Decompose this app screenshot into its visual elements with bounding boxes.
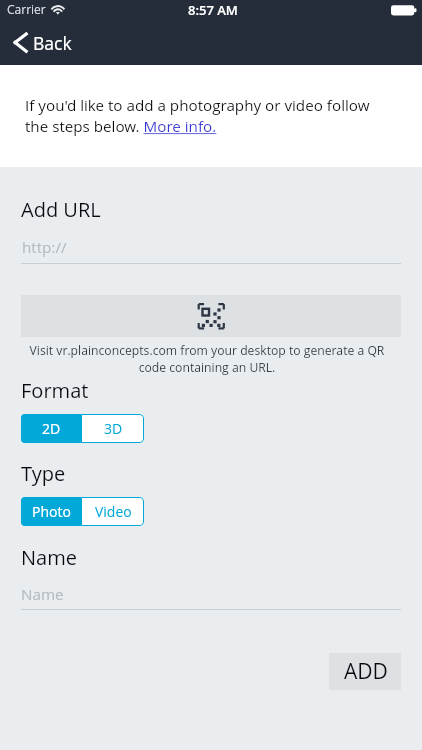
staticText: Video xyxy=(95,502,132,521)
staticText: Name xyxy=(21,544,78,571)
staticText: Add URL xyxy=(21,196,101,223)
button[interactable]: Video xyxy=(82,497,144,526)
staticText: ADD xyxy=(344,657,388,686)
button[interactable]: 2D xyxy=(21,414,82,443)
staticText: 8:57 AM xyxy=(188,1,238,19)
staticText: Format xyxy=(21,377,89,404)
staticText: If you'd like to add a photography or vi… xyxy=(25,95,381,137)
button[interactable]: Photo xyxy=(21,497,82,526)
button[interactable]: Back xyxy=(0,20,86,65)
other: QR code xyxy=(198,303,225,330)
staticText: 3D xyxy=(104,419,123,438)
staticText: Visit vr.plainconcepts.com from your des… xyxy=(28,342,386,376)
staticText: http:// xyxy=(22,237,67,258)
staticText: Name xyxy=(21,584,64,605)
staticText: Type xyxy=(21,460,66,487)
staticText: Carrier xyxy=(7,1,46,17)
staticText: Back xyxy=(33,31,72,55)
button[interactable]: ADD xyxy=(329,653,401,690)
button[interactable]: 3D xyxy=(82,414,144,443)
other: Battery xyxy=(391,5,418,16)
staticText: 2D xyxy=(42,419,61,438)
staticText: Photo xyxy=(32,502,71,521)
other: Wi-Fi xyxy=(51,0,65,16)
